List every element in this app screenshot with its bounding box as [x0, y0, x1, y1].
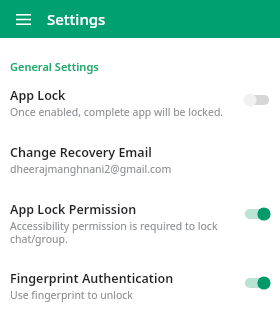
button[interactable]: Toggle on	[240, 272, 274, 294]
button[interactable]: Fingerprint Authentication	[0, 270, 280, 302]
button[interactable]: Open navigation menu	[8, 4, 38, 34]
staticText: Change Recovery Email	[10, 144, 152, 161]
staticText: dheerajmanghnani2@gmail.com	[10, 162, 172, 176]
button[interactable]: Toggle off	[240, 89, 274, 111]
staticText: App Lock	[10, 87, 66, 104]
staticText: Once enabled, complete app will be locke…	[10, 105, 224, 119]
staticText: Fingerprint Authentication	[10, 270, 174, 287]
staticText: Accessibility permission is required to …	[10, 219, 236, 246]
button[interactable]: App Lock Permission	[0, 201, 280, 246]
staticText: General Settings	[10, 59, 99, 74]
staticText: App Lock Permission	[10, 201, 137, 218]
staticText: Settings	[47, 9, 106, 29]
button[interactable]: Change Recovery Email	[0, 144, 280, 176]
staticText: Use fingerprint to unlock	[10, 288, 133, 302]
button[interactable]: App Lock	[0, 87, 280, 119]
button[interactable]: Toggle on	[240, 203, 274, 225]
